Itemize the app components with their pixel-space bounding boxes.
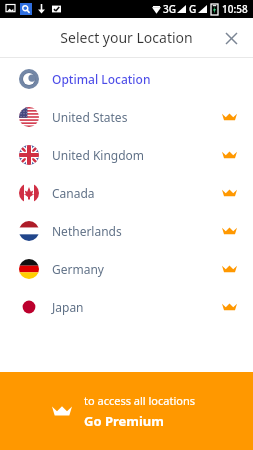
staticText: Netherlands — [52, 223, 122, 239]
staticText: to access all locations — [84, 393, 196, 408]
button[interactable]: Japan — [0, 288, 253, 326]
staticText: G — [189, 2, 197, 16]
button[interactable]: United Kingdom — [0, 136, 253, 174]
staticText: United States — [52, 109, 128, 125]
button[interactable]: Close — [219, 26, 243, 50]
button[interactable]: United States — [0, 98, 253, 136]
staticText: Canada — [52, 185, 95, 201]
button[interactable]: Netherlands — [0, 212, 253, 250]
staticText: Germany — [52, 261, 104, 277]
staticText: Japan — [52, 299, 84, 315]
button[interactable]: to access all locations — [0, 372, 253, 450]
button[interactable]: Germany — [0, 250, 253, 288]
staticText: 3G — [163, 2, 176, 16]
staticText: 10:58 — [222, 2, 248, 16]
button[interactable]: Canada — [0, 174, 253, 212]
staticText: Go Premium — [84, 412, 164, 430]
staticText: Optimal Location — [52, 71, 151, 87]
staticText: United Kingdom — [52, 147, 145, 163]
staticText: Select your Location — [60, 28, 193, 47]
button[interactable]: Optimal Location — [0, 60, 253, 98]
